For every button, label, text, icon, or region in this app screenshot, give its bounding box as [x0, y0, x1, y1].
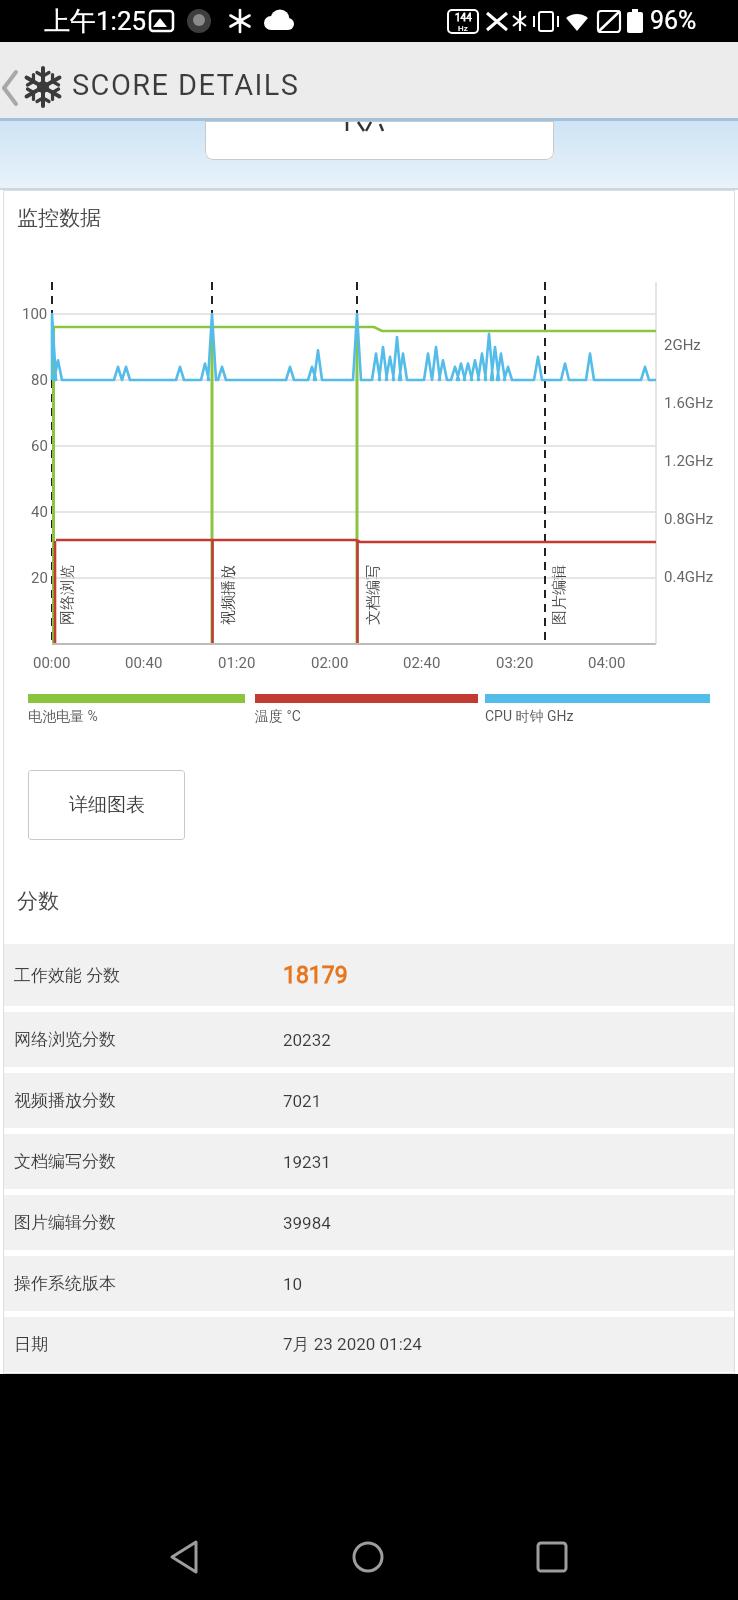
button[interactable] [0, 42, 738, 118]
staticText: 上午1:25 [44, 5, 147, 38]
button[interactable]: 日期 [4, 1317, 734, 1372]
staticText: 图片编辑分数 [14, 1212, 116, 1233]
staticText: 工作效能 分数 [14, 965, 121, 986]
staticText: 1.2GHz [664, 452, 714, 470]
staticText: Hz [458, 24, 468, 33]
button[interactable]: 网络浏览分数 [4, 1012, 734, 1067]
staticText: 0.8GHz [664, 510, 714, 528]
staticText: 96% [650, 6, 697, 35]
staticText: 60 [31, 437, 48, 455]
staticText: 10 [283, 1274, 303, 1294]
staticText: 80 [31, 371, 48, 389]
staticText: 7月 23 2020 01:24 [283, 1334, 422, 1355]
staticText: 文档编写分数 [14, 1151, 116, 1172]
staticText: 18179 [283, 962, 348, 989]
staticText: 电池电量 % [28, 708, 98, 726]
staticText: CPU 时钟 GHz [485, 708, 574, 726]
staticText: 01:20 [218, 654, 256, 672]
staticText: 文档编写 [364, 565, 383, 625]
button[interactable]: 工作效能 分数 [4, 944, 734, 1006]
button[interactable] [526, 1532, 576, 1582]
button[interactable]: 文档编写分数 [4, 1134, 734, 1189]
staticText: SCORE DETAILS [72, 68, 300, 102]
staticText: 视频播放 [219, 565, 238, 625]
staticText: 详细图表 [69, 793, 145, 817]
staticText: 网络浏览分数 [14, 1029, 116, 1050]
staticText: 04:00 [588, 654, 626, 672]
button[interactable] [343, 1532, 393, 1582]
staticText: 图片编辑 [550, 565, 569, 625]
staticText: 19231 [283, 1152, 331, 1172]
staticText: 20 [31, 569, 48, 587]
staticText: 100 [22, 305, 48, 323]
staticText: 分数 [17, 888, 59, 914]
staticText: 视频播放分数 [14, 1090, 116, 1111]
staticText: 监控数据 [17, 205, 101, 231]
staticText: 日期 [14, 1334, 48, 1355]
staticText: 0.4GHz [664, 568, 714, 586]
staticText: 144 [455, 12, 472, 24]
staticText: 20232 [283, 1030, 331, 1050]
button[interactable]: 图片编辑分数 [4, 1195, 734, 1250]
staticText: 00:40 [125, 654, 163, 672]
staticText: 1.6GHz [664, 394, 714, 412]
button[interactable] [160, 1532, 210, 1582]
button[interactable]: 详细图表 [28, 770, 185, 840]
staticText: 2GHz [664, 336, 701, 354]
button[interactable]: 操作系统版本 [4, 1256, 734, 1311]
staticText: 温度 °C [255, 708, 301, 726]
staticText: 40 [31, 503, 48, 521]
staticText: 网络浏览 [58, 565, 77, 625]
staticText: 02:40 [403, 654, 441, 672]
button[interactable]: 视频播放分数 [4, 1073, 734, 1128]
staticText: 39984 [283, 1213, 331, 1233]
staticText: 03:20 [496, 654, 534, 672]
staticText: 操作系统版本 [14, 1273, 116, 1294]
staticText: 7021 [283, 1091, 322, 1111]
staticText: 02:00 [311, 654, 349, 672]
staticText: 00:00 [33, 654, 71, 672]
